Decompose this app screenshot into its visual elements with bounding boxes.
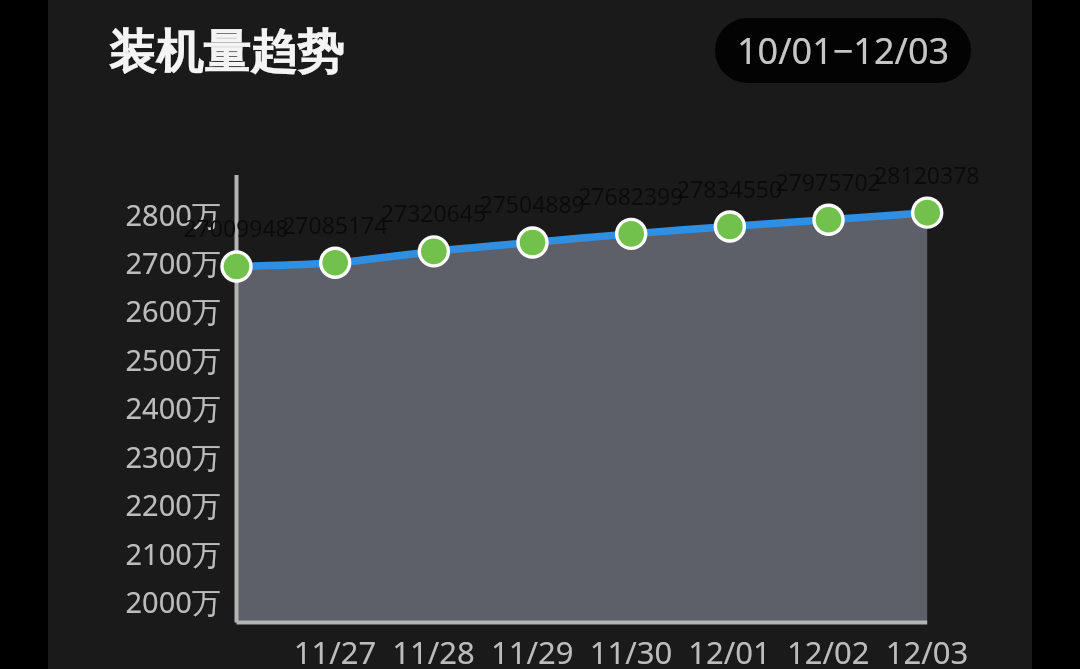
button[interactable]: 数据点 27682399 xyxy=(611,214,651,254)
button[interactable]: 10/01−12/03 xyxy=(715,18,971,83)
button[interactable]: 数据点 27975702 xyxy=(809,200,849,240)
staticText: 装机量趋势 xyxy=(109,23,344,82)
other: 装机量趋势折线图 xyxy=(48,0,1032,669)
button[interactable]: 数据点 27320645 xyxy=(414,231,454,271)
button[interactable]: 数据点 27504889 xyxy=(513,222,553,262)
button[interactable]: 数据点 27009948 xyxy=(217,246,257,286)
button[interactable]: 数据点 28120378 xyxy=(907,193,947,233)
staticText: 10/01−12/03 xyxy=(737,26,950,75)
button[interactable]: 数据点 27085174 xyxy=(315,243,355,283)
button[interactable]: 数据点 27834550 xyxy=(710,207,750,247)
